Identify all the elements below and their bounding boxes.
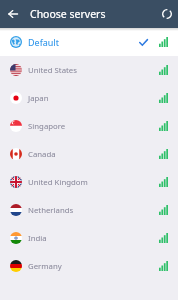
staticText: Choose servers xyxy=(30,7,106,21)
button[interactable]: Default xyxy=(0,28,178,56)
button[interactable]: Back xyxy=(3,4,23,24)
staticText: United Kingdom xyxy=(28,177,88,188)
button[interactable]: Japan xyxy=(0,84,178,112)
button[interactable]: Canada xyxy=(0,140,178,168)
button[interactable]: India xyxy=(0,224,178,252)
button[interactable]: Netherlands xyxy=(0,196,178,224)
button[interactable]: Singapore xyxy=(0,112,178,140)
staticText: India xyxy=(28,233,47,244)
staticText: Canada xyxy=(28,149,56,160)
staticText: Default xyxy=(28,36,59,48)
staticText: Singapore xyxy=(28,121,66,132)
button[interactable]: Germany xyxy=(0,252,178,280)
staticText: Germany xyxy=(28,261,62,272)
staticText: Netherlands xyxy=(28,205,74,216)
button[interactable]: United States xyxy=(0,56,178,84)
button[interactable]: United Kingdom xyxy=(0,168,178,196)
button[interactable]: Refresh xyxy=(157,4,177,24)
staticText: Japan xyxy=(28,93,49,104)
staticText: United States xyxy=(28,65,77,76)
